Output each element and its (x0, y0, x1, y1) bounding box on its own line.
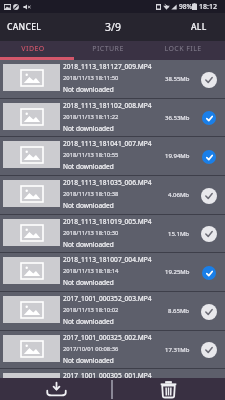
staticText: Not downloaded (63, 201, 114, 210)
staticText: 15.1Mb (168, 230, 190, 238)
staticText: Not downloaded (63, 162, 114, 171)
button[interactable]: Delete (112, 378, 225, 400)
button[interactable]: 2017_1001_000305_001.MP4 (0, 369, 225, 400)
button[interactable]: Download (0, 378, 112, 400)
staticText: 2018_1113_181127_009.MP4 (63, 62, 152, 71)
button[interactable]: 2018_1113_181035_006.MP4 (0, 176, 225, 214)
button[interactable]: LOCK FILE (150, 41, 225, 57)
staticText: LOCK FILE (164, 44, 202, 54)
staticText: 2017_1001_000325_002.MP4 (63, 333, 152, 342)
button[interactable]: Select (200, 71, 217, 88)
staticText: 2018/11/13 18:18:14 (63, 267, 119, 275)
button[interactable]: Select (200, 187, 217, 204)
staticText: 2018_1113_181102_008.MP4 (63, 101, 152, 110)
button[interactable]: 2017_1001_000325_002.MP4 (0, 331, 225, 368)
button[interactable]: 2018_1113_181041_007.MP4 (0, 137, 225, 175)
staticText: 2018/11/13 18:11:50 (63, 74, 119, 82)
staticText: 19.94Mb (165, 152, 190, 160)
button[interactable]: 2018_1113_181019_005.MP4 (0, 215, 225, 252)
staticText: CANCEL (7, 21, 42, 33)
staticText: PICTURE (92, 44, 124, 54)
staticText: 2018_1113_181019_005.MP4 (63, 217, 152, 226)
staticText: 38.55Mb (165, 75, 190, 83)
staticText: 98% (179, 2, 193, 11)
button[interactable]: 2017_1001_000352_003.MP4 (0, 292, 225, 330)
staticText: 2017_1001_000305_001.MP4 (63, 371, 152, 380)
staticText: 3/9 (105, 20, 121, 34)
staticText: 2018/11/13 18:10:02 (63, 306, 119, 314)
staticText: 36.53Mb (165, 114, 190, 122)
button[interactable]: ALL (150, 13, 225, 41)
staticText: 2018/11/13 18:10:55 (63, 151, 119, 159)
button[interactable]: Selected (200, 109, 217, 126)
button[interactable]: 2018_1113_181127_009.MP4 (0, 60, 225, 98)
staticText: 18:12 (199, 2, 217, 12)
staticText: 9.12Mb (168, 384, 190, 392)
button[interactable]: CANCEL (0, 13, 75, 41)
staticText: 2018/11/13 18:11:22 (63, 113, 119, 121)
staticText: Not downloaded (63, 278, 114, 287)
staticText: Not downloaded (63, 240, 114, 249)
staticText: 2018/11/13 18:10:30 (63, 229, 119, 237)
staticText: 4.06Mb (168, 191, 190, 199)
staticText: 2018/11/13 18:10:38 (63, 190, 119, 198)
button[interactable]: 2018_1113_181007_004.MP4 (0, 253, 225, 291)
staticText: 2018_1113_181007_004.MP4 (63, 255, 152, 264)
staticText: Not downloaded (63, 317, 114, 326)
button[interactable]: 2018_1113_181102_008.MP4 (0, 99, 225, 136)
button[interactable]: Selected (200, 264, 217, 281)
button[interactable]: Select (200, 225, 217, 242)
staticText: 17.31Mb (165, 346, 190, 354)
staticText: ALL (191, 21, 207, 33)
staticText: 2018_1113_181041_007.MP4 (63, 139, 152, 148)
button[interactable]: PICTURE (75, 41, 150, 57)
button[interactable]: Select (200, 303, 217, 320)
staticText: 19.25Mb (165, 268, 190, 276)
staticText: Not downloaded (63, 124, 114, 133)
button[interactable]: Selected (200, 148, 217, 165)
button[interactable]: VIDEO (0, 41, 75, 57)
staticText: Not downloaded (63, 356, 114, 365)
staticText: Not downloaded (63, 394, 114, 400)
staticText: 8.65Mb (168, 307, 190, 315)
staticText: 2018_1113_181035_006.MP4 (63, 178, 152, 187)
staticText: 2017/10/01 00:08:36 (63, 345, 119, 353)
button[interactable]: Select (200, 341, 217, 358)
staticText: Not downloaded (63, 85, 114, 94)
staticText: 2017/10/01 00:08:12 (63, 383, 119, 391)
staticText: VIDEO (21, 44, 45, 54)
staticText: 2017_1001_000352_003.MP4 (63, 294, 152, 303)
